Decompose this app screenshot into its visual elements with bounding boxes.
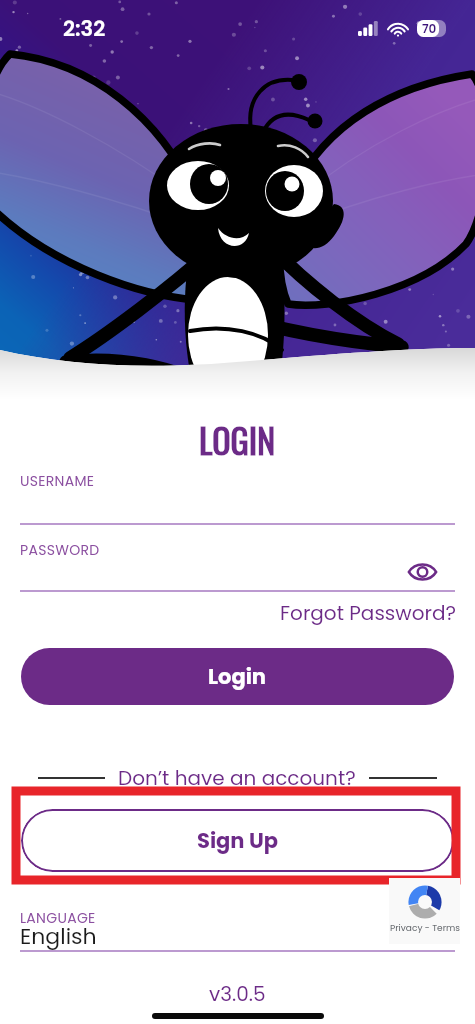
staticText: 2:32 xyxy=(63,14,106,43)
staticText: LOGIN xyxy=(199,414,276,464)
staticText: LANGUAGE xyxy=(20,908,96,928)
staticText: Sign Up xyxy=(197,826,279,855)
staticText: v3.0.5 xyxy=(209,980,266,1008)
button[interactable]: English xyxy=(20,921,97,952)
staticText: PASSWORD xyxy=(20,540,100,560)
button[interactable]: Sign Up xyxy=(21,809,454,872)
button[interactable]: reCAPTCHA xyxy=(389,878,460,944)
staticText: Login xyxy=(208,662,267,691)
staticText: Privacy - Terms xyxy=(390,922,460,935)
staticText: USERNAME xyxy=(20,471,95,491)
staticText: 70 xyxy=(422,20,437,37)
staticText: English xyxy=(20,921,97,952)
button[interactable]: Forgot Password? xyxy=(280,599,456,627)
button[interactable]: Login xyxy=(21,648,454,705)
staticText: Forgot Password? xyxy=(280,599,456,627)
button[interactable]: Show password xyxy=(404,554,440,590)
staticText: Don’t have an account? xyxy=(118,764,356,792)
